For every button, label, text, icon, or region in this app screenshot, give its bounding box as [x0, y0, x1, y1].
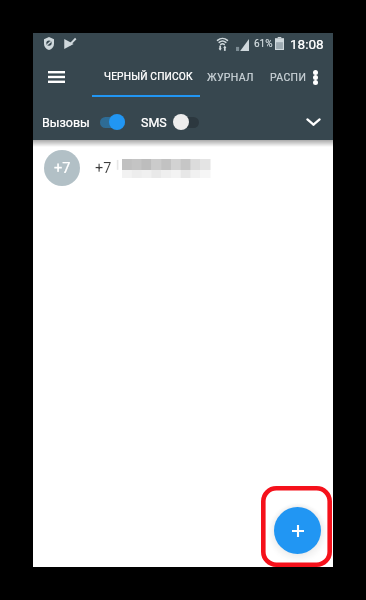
button[interactable]: Add number to blacklist — [274, 507, 321, 554]
staticText: +7 — [95, 160, 112, 177]
staticText: ЖУРНАЛ — [207, 71, 254, 83]
button[interactable]: Expand filters — [299, 108, 327, 135]
button[interactable]: ЧЕРНЫЙ СПИСОК — [94, 58, 202, 96]
button[interactable]: РАСПИ — [264, 58, 313, 96]
button[interactable]: Open navigation menu — [39, 63, 73, 91]
button[interactable]: More options — [304, 63, 326, 91]
staticText: +7 — [54, 160, 71, 177]
button[interactable]: +7 — [33, 144, 333, 192]
staticText: SMS — [141, 115, 167, 130]
staticText: РАСПИ — [270, 71, 307, 83]
button[interactable]: SMS — [137, 107, 199, 136]
staticText: ЧЕРНЫЙ СПИСОК — [104, 71, 193, 83]
button[interactable]: ЖУРНАЛ — [201, 58, 260, 96]
staticText: 18:08 — [290, 36, 324, 52]
staticText: Вызовы — [42, 115, 90, 130]
staticText: 61% — [254, 38, 273, 50]
button[interactable]: Вызовы — [37, 107, 125, 136]
